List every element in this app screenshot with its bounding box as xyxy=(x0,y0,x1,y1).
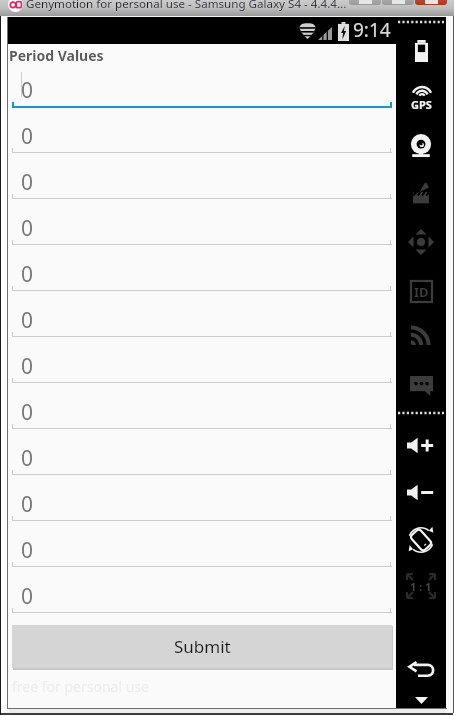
staticText: 0 xyxy=(21,260,34,289)
button[interactable]: Period value input xyxy=(12,436,392,477)
staticText: 1 : 1 xyxy=(410,579,432,594)
button[interactable]: Volume up xyxy=(396,424,446,466)
staticText: 0 xyxy=(21,214,34,243)
staticText: Submit xyxy=(174,635,231,658)
button[interactable]: Battery xyxy=(396,30,446,72)
staticText: GPS xyxy=(411,97,432,112)
button[interactable]: Period value input xyxy=(12,344,392,385)
button[interactable]: Network xyxy=(396,317,446,359)
button[interactable]: Screen capture xyxy=(396,172,446,214)
button[interactable]: Period value input xyxy=(12,298,392,339)
staticText: 0 xyxy=(21,582,34,611)
staticText: ID xyxy=(414,283,429,301)
button[interactable]: Window button xyxy=(382,0,414,5)
button[interactable]: Accelerometer xyxy=(396,221,446,263)
button[interactable]: Scale 1 to 1 xyxy=(396,565,446,607)
button[interactable]: Submit xyxy=(12,625,392,668)
button[interactable]: Volume down xyxy=(396,471,446,513)
staticText: 0 xyxy=(21,306,34,335)
button[interactable]: Period value input xyxy=(12,160,392,201)
button[interactable]: Period value input xyxy=(12,528,392,569)
button[interactable]: Period value input xyxy=(12,68,392,109)
staticText: 0 xyxy=(21,168,34,197)
staticText: Period Values xyxy=(9,46,104,65)
staticText: Genymotion for personal use - Samsung Ga… xyxy=(26,0,347,12)
staticText: 9:14 xyxy=(353,17,391,43)
button[interactable]: Period value input xyxy=(12,574,392,615)
button[interactable]: Camera xyxy=(396,125,446,167)
button[interactable]: Back xyxy=(396,649,446,691)
button[interactable]: Period value input xyxy=(12,390,392,431)
button[interactable]: Rotate screen xyxy=(396,519,446,561)
button[interactable]: Identifiers xyxy=(396,270,446,312)
button[interactable]: Period value input xyxy=(12,252,392,293)
staticText: 0 xyxy=(21,398,34,427)
staticText: 0 xyxy=(21,122,34,151)
button[interactable]: Close xyxy=(415,0,447,5)
staticText: 0 xyxy=(21,352,34,381)
button[interactable]: GPS xyxy=(396,78,446,120)
staticText: 0 xyxy=(21,536,34,565)
staticText: 0 xyxy=(21,490,34,519)
staticText: free for personal use xyxy=(12,677,149,696)
button[interactable]: Messaging xyxy=(396,365,446,407)
staticText: 0 xyxy=(21,444,34,473)
button[interactable]: Period value input xyxy=(12,482,392,523)
staticText: 0 xyxy=(21,76,34,105)
button[interactable]: More xyxy=(396,679,446,716)
button[interactable]: Period value input xyxy=(12,114,392,155)
button[interactable]: Window button xyxy=(349,0,381,5)
button[interactable]: Period value input xyxy=(12,206,392,247)
